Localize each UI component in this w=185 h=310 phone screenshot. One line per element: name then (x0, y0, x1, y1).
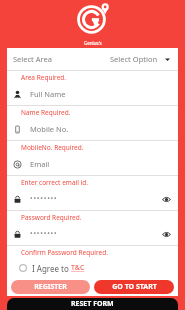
staticText: Genius's (84, 40, 102, 46)
staticText: Password Required. (21, 213, 82, 222)
button[interactable]: •••••••• (7, 223, 178, 245)
staticText: MobileNo. Required. (21, 143, 84, 152)
staticText: Area Required. (21, 73, 67, 82)
staticText: Confirm Password Required. (21, 248, 108, 257)
staticText: Select Area (13, 54, 52, 64)
button[interactable]: Select Area (7, 48, 178, 70)
button[interactable]: Mobile No. (7, 118, 178, 140)
staticText: GO TO START (112, 282, 157, 292)
staticText: •••••••• (30, 229, 58, 239)
staticText: Select Option (110, 54, 158, 64)
staticText: Enter correct email id. (21, 178, 88, 187)
staticText: REGISTER (34, 282, 67, 292)
staticText: Name Required. (21, 108, 71, 117)
button[interactable]: RESET FORM (7, 298, 178, 310)
button[interactable]: T&C (71, 263, 85, 273)
staticText: •••••••• (30, 194, 58, 204)
button[interactable]: Show password (161, 229, 172, 240)
staticText: Full Name (30, 89, 66, 99)
button[interactable]: Show password (161, 194, 172, 205)
staticText: I Agree to (32, 263, 71, 274)
button[interactable]: •••••••• (7, 188, 178, 210)
button[interactable]: GO TO START (94, 280, 174, 294)
button[interactable]: I Agree to (7, 258, 178, 278)
button[interactable]: Full Name (7, 83, 178, 105)
staticText: RESET FORM (71, 299, 114, 309)
staticText: Email (30, 159, 50, 169)
button[interactable]: REGISTER (11, 280, 90, 294)
staticText: Mobile No. (30, 124, 69, 134)
button[interactable]: Email (7, 153, 178, 175)
